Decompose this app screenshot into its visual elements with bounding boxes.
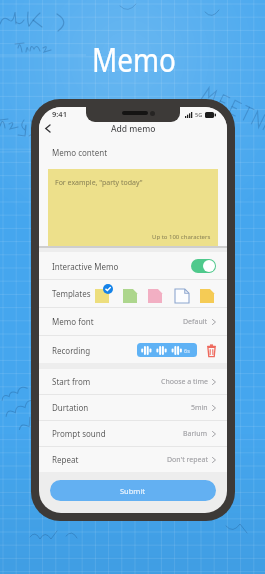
button[interactable]: Recording [39, 336, 227, 363]
staticText: Start from [52, 376, 91, 387]
staticText: Templates [52, 288, 91, 299]
staticText: Memo [92, 38, 176, 82]
button[interactable]: Template [95, 284, 109, 303]
button[interactable]: Repeat [39, 447, 227, 472]
staticText: Choose a time [161, 377, 208, 387]
staticText: Memo font [52, 316, 94, 327]
button[interactable]: Template [148, 284, 162, 303]
staticText: For example, "party today" [55, 178, 143, 188]
button[interactable]: Interactive Memo toggle [191, 259, 216, 273]
staticText: Memo content [52, 147, 108, 158]
staticText: Repeat [52, 454, 79, 465]
staticText: Barium [183, 429, 208, 439]
staticText: 5G [195, 111, 203, 118]
button[interactable]: Submit [50, 480, 216, 501]
staticText: 6s [184, 347, 190, 354]
button[interactable]: Templates [39, 280, 227, 307]
staticText: Add memo [111, 123, 156, 135]
button[interactable]: Durtation [39, 395, 227, 420]
button[interactable]: Template [200, 284, 214, 303]
staticText: Submit [120, 486, 146, 496]
button[interactable]: Template [175, 284, 189, 303]
button[interactable]: Start from [39, 369, 227, 394]
button[interactable]: Back [40, 121, 55, 136]
button[interactable]: Delete recording [207, 344, 216, 357]
staticText: 5min [191, 403, 208, 413]
button[interactable]: Template [123, 284, 137, 303]
staticText: 9:41 [52, 109, 67, 119]
staticText: Interactive Memo [52, 261, 119, 272]
staticText: Don't repeat [167, 455, 208, 465]
staticText: Recording [52, 345, 91, 356]
staticText: Prompt sound [52, 428, 106, 439]
button[interactable]: Interactive Memo [39, 252, 227, 279]
staticText: Up to 100 characters [152, 233, 211, 241]
button[interactable]: Memo font [39, 308, 227, 335]
staticText: Default [183, 317, 208, 327]
button[interactable]: Prompt sound [39, 421, 227, 446]
staticText: Durtation [52, 402, 89, 413]
button[interactable]: 6s [137, 343, 197, 357]
